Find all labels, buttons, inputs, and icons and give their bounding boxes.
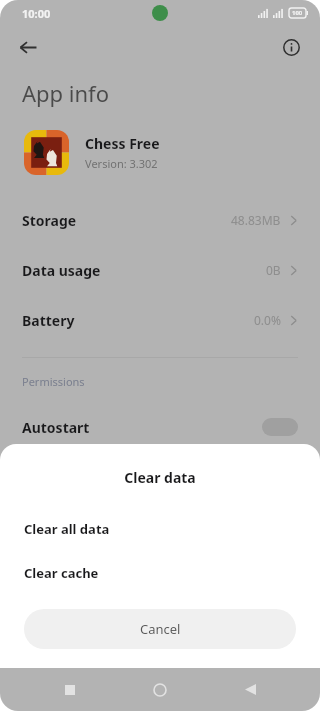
staticText: Storage bbox=[22, 211, 77, 230]
button[interactable]: App details bbox=[274, 30, 308, 64]
button[interactable]: Clear cache bbox=[0, 551, 320, 595]
button[interactable]: Storage bbox=[0, 195, 320, 245]
staticText: Permissions bbox=[22, 374, 85, 389]
staticText: Chess Free bbox=[85, 134, 160, 153]
staticText: 10:00 bbox=[22, 6, 51, 21]
staticText: App info bbox=[22, 78, 109, 108]
button[interactable]: Back bbox=[10, 29, 46, 65]
staticText: Cancel bbox=[140, 620, 181, 638]
button[interactable]: Recents bbox=[25, 668, 115, 711]
staticText: 48.83MB bbox=[231, 212, 281, 228]
staticText: Clear all data bbox=[24, 520, 110, 538]
staticText: Version: 3.302 bbox=[85, 156, 158, 171]
staticText: 0B bbox=[266, 262, 281, 278]
button[interactable]: Clear all data bbox=[0, 507, 320, 551]
staticText: 100 bbox=[292, 9, 303, 17]
button[interactable]: Data usage bbox=[0, 245, 320, 295]
button[interactable]: Battery bbox=[0, 295, 320, 345]
button[interactable]: Cancel bbox=[24, 609, 296, 649]
staticText: Clear data bbox=[0, 468, 320, 487]
button[interactable]: Autostart bbox=[0, 407, 320, 447]
staticText: Data usage bbox=[22, 261, 101, 280]
button[interactable]: Back bbox=[205, 668, 295, 711]
staticText: Battery bbox=[22, 311, 75, 330]
staticText: Autostart bbox=[22, 418, 90, 437]
staticText: Clear cache bbox=[24, 564, 99, 582]
staticText: 0.0% bbox=[254, 312, 281, 328]
button[interactable]: Home bbox=[115, 668, 205, 711]
